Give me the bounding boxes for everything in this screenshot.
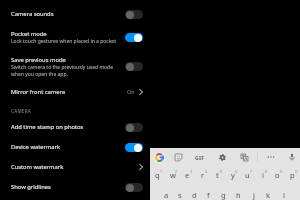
button[interactable]: 9 bbox=[270, 167, 285, 182]
button[interactable]: Translate bbox=[237, 150, 251, 164]
staticText: Add time stamp on photos bbox=[11, 123, 84, 131]
button[interactable]: Switch off bbox=[125, 62, 143, 71]
button[interactable]: Camera sounds bbox=[0, 4, 151, 24]
button[interactable]: l bbox=[276, 187, 291, 200]
button[interactable]: Keyboard settings bbox=[215, 150, 229, 164]
button[interactable]: Custom watermark bbox=[0, 157, 151, 177]
staticText: Lock touch gestures when placed in a poc… bbox=[11, 38, 116, 45]
button[interactable]: Google bbox=[152, 150, 166, 164]
button[interactable]: 7 bbox=[240, 167, 255, 182]
staticText: p bbox=[290, 170, 295, 180]
button[interactable]: k bbox=[261, 187, 276, 200]
staticText: Switch camera to the previously used mod… bbox=[11, 64, 113, 77]
staticText: q bbox=[155, 170, 160, 180]
staticText: a bbox=[164, 190, 169, 200]
staticText: u bbox=[245, 170, 250, 180]
button[interactable]: Device watermark bbox=[0, 137, 151, 157]
button[interactable]: Show gridlines bbox=[0, 177, 151, 197]
button[interactable]: Switch on bbox=[125, 143, 143, 152]
staticText: Show gridlines bbox=[11, 183, 51, 191]
staticText: s bbox=[178, 190, 182, 200]
staticText: 9 bbox=[280, 169, 283, 174]
button[interactable]: Save previous mode bbox=[0, 50, 151, 82]
button[interactable]: f bbox=[201, 187, 216, 200]
button[interactable]: 8 bbox=[255, 167, 270, 182]
staticText: Pocket mode bbox=[11, 30, 47, 38]
button[interactable]: More options bbox=[264, 150, 278, 164]
button[interactable]: 6 bbox=[225, 167, 240, 182]
staticText: e bbox=[185, 170, 190, 180]
button[interactable]: Voice input bbox=[285, 150, 299, 164]
button[interactable]: 1 bbox=[150, 167, 165, 182]
staticText: 5 bbox=[220, 169, 223, 174]
button[interactable]: Mirror front camera bbox=[0, 82, 151, 102]
staticText: 3 bbox=[190, 169, 193, 174]
staticText: Save previous mode bbox=[11, 56, 66, 64]
staticText: 4 bbox=[205, 169, 208, 174]
button[interactable]: 0 bbox=[285, 167, 300, 182]
staticText: g bbox=[221, 190, 226, 200]
staticText: CAMERA bbox=[11, 108, 32, 114]
staticText: Device watermark bbox=[11, 143, 61, 151]
button[interactable]: Add time stamp on photos bbox=[0, 117, 151, 137]
staticText: j bbox=[253, 190, 255, 200]
staticText: t bbox=[216, 170, 219, 180]
button[interactable]: s bbox=[173, 187, 187, 200]
button[interactable]: Switch off bbox=[125, 123, 143, 132]
staticText: d bbox=[192, 190, 197, 200]
button[interactable]: d bbox=[187, 187, 201, 200]
staticText: 2 bbox=[175, 169, 178, 174]
staticText: Custom watermark bbox=[11, 163, 64, 171]
staticText: h bbox=[236, 190, 241, 200]
button[interactable]: h bbox=[231, 187, 246, 200]
button[interactable]: Pocket mode bbox=[0, 24, 151, 50]
staticText: 1 bbox=[160, 169, 163, 174]
staticText: y bbox=[231, 170, 235, 180]
staticText: On bbox=[127, 88, 135, 95]
staticText: k bbox=[266, 190, 271, 200]
button[interactable]: 3 bbox=[180, 167, 195, 182]
button[interactable]: GIF bbox=[193, 150, 207, 164]
button[interactable]: Switch on bbox=[125, 33, 143, 42]
staticText: 6 bbox=[235, 169, 238, 174]
button[interactable]: 5 bbox=[210, 167, 225, 182]
staticText: f bbox=[207, 190, 210, 200]
button[interactable]: Switch off bbox=[125, 183, 143, 192]
button[interactable]: Stickers bbox=[171, 150, 185, 164]
button[interactable]: Switch off bbox=[125, 10, 143, 19]
button[interactable]: 4 bbox=[195, 167, 210, 182]
staticText: 8 bbox=[265, 169, 268, 174]
staticText: Camera sounds bbox=[11, 10, 54, 18]
button[interactable]: j bbox=[246, 187, 261, 200]
staticText: r bbox=[201, 170, 205, 180]
button[interactable]: 2 bbox=[165, 167, 180, 182]
staticText: i bbox=[262, 170, 264, 180]
staticText: GIF bbox=[195, 154, 205, 161]
staticText: w bbox=[170, 170, 176, 180]
button[interactable]: g bbox=[216, 187, 231, 200]
button[interactable]: a bbox=[159, 187, 173, 200]
staticText: o bbox=[275, 170, 280, 180]
staticText: 0 bbox=[295, 169, 298, 174]
staticText: Mirror front camera bbox=[11, 88, 66, 96]
staticText: l bbox=[283, 190, 285, 200]
staticText: 7 bbox=[250, 169, 253, 174]
